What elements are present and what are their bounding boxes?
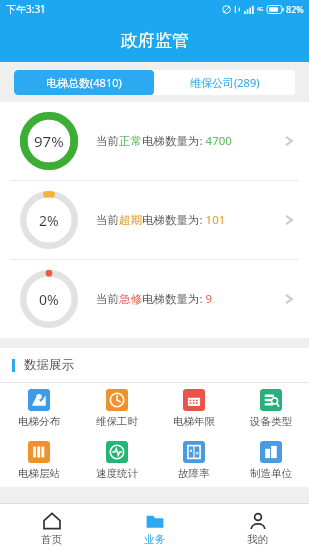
button[interactable]: 0%: [0, 260, 309, 338]
staticText: 当前正常电梯数量为: 4700: [96, 133, 232, 149]
staticText: 97%: [34, 131, 64, 151]
button[interactable]: 首页: [0, 504, 103, 550]
staticText: 4G: [257, 6, 264, 13]
button[interactable]: 故障率: [155, 435, 232, 487]
button[interactable]: 速度统计: [78, 435, 155, 487]
button[interactable]: 设备类型: [232, 383, 309, 435]
staticText: 2%: [39, 211, 59, 230]
button[interactable]: 我的: [206, 504, 309, 550]
staticText: 电梯分布: [18, 415, 60, 428]
staticText: 82%: [286, 3, 304, 15]
staticText: 制造单位: [250, 467, 292, 480]
button[interactable]: 维保公司(289): [154, 70, 295, 95]
staticText: 下午3:31: [6, 2, 46, 16]
staticText: 首页: [41, 533, 62, 546]
staticText: 业务: [144, 533, 165, 546]
button[interactable]: 2%: [0, 181, 309, 259]
staticText: 电梯层站: [18, 467, 60, 480]
staticText: 当前急修电梯数量为: 9: [96, 291, 213, 307]
staticText: 维保公司(289): [190, 75, 260, 90]
staticText: 维保工时: [96, 415, 138, 428]
button[interactable]: 电梯分布: [0, 383, 78, 435]
button[interactable]: 业务: [103, 504, 206, 550]
staticText: 电梯总数(4810): [46, 75, 122, 90]
button[interactable]: 电梯层站: [0, 435, 78, 487]
staticText: 数据展示: [24, 357, 74, 373]
staticText: 我的: [247, 533, 268, 546]
button[interactable]: 电梯总数(4810): [14, 70, 154, 95]
staticText: 政府监管: [121, 30, 189, 51]
staticText: 0%: [39, 290, 59, 309]
button[interactable]: 97%: [0, 102, 309, 180]
staticText: 设备类型: [250, 415, 292, 428]
button[interactable]: 维保工时: [78, 383, 155, 435]
button[interactable]: 制造单位: [232, 435, 309, 487]
staticText: 电梯年限: [173, 415, 215, 428]
staticText: 当前超期电梯数量为: 101: [96, 212, 226, 228]
button[interactable]: 电梯年限: [155, 383, 232, 435]
staticText: 速度统计: [96, 467, 138, 480]
staticText: 故障率: [178, 467, 210, 480]
